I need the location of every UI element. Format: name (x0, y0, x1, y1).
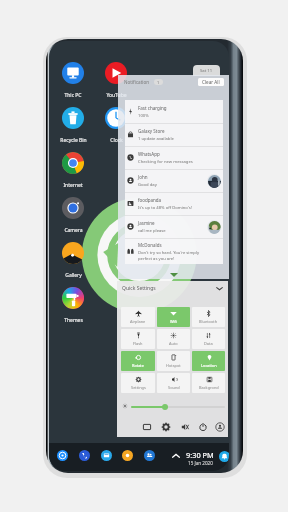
button[interactable]: Rotate (121, 351, 155, 371)
button[interactable]: Quick Settings (122, 281, 223, 295)
staticText: Themes (64, 317, 83, 324)
staticText: John (138, 174, 148, 180)
staticText: Sound (168, 385, 180, 390)
button[interactable]: Notifications (219, 451, 229, 462)
button[interactable]: Jasmine (127, 215, 221, 238)
staticText: It's up to 48% off Domino's! (138, 205, 192, 211)
button[interactable]: Camera (52, 195, 94, 235)
staticText: Recycle Bin (60, 137, 87, 144)
button[interactable]: Volume (180, 422, 190, 432)
button[interactable]: Themes (52, 285, 94, 325)
button[interactable]: Thic PC (52, 60, 94, 100)
staticText: Notification (124, 79, 150, 85)
staticText: Thic PC (64, 92, 82, 99)
button[interactable]: Clock (95, 105, 137, 145)
staticText: Auto (169, 341, 178, 346)
staticText: Checking for new messages (138, 159, 193, 165)
staticText: Galaxy Store (138, 128, 165, 134)
button[interactable]: Power (198, 422, 208, 432)
button[interactable]: YouTube (95, 60, 137, 100)
staticText: Bluetooth (199, 319, 218, 324)
button[interactable]: Gallery (52, 240, 94, 280)
button[interactable]: User (215, 422, 225, 432)
button[interactable]: Location (192, 351, 225, 371)
staticText: Settings (131, 385, 146, 390)
button[interactable]: Auto (157, 329, 190, 349)
button[interactable]: App 1 (57, 450, 68, 461)
staticText: Clock (110, 137, 123, 144)
button[interactable]: Fast charging (127, 100, 221, 123)
staticText: Airplane (130, 319, 146, 324)
button[interactable]: Bluetooth (192, 307, 225, 327)
button[interactable]: John (127, 169, 221, 192)
button[interactable]: Backgrond (192, 373, 225, 393)
button[interactable]: Wifi (157, 307, 190, 327)
button[interactable]: App 2 (79, 450, 90, 461)
staticText: Backgrond (199, 385, 219, 390)
staticText: Camera (64, 227, 83, 234)
staticText: 1 update available (138, 136, 174, 142)
button[interactable]: Show hidden icons (171, 451, 181, 461)
button[interactable]: Clear All (198, 78, 224, 86)
button[interactable]: McDonalds (127, 238, 221, 264)
staticText: 1 (157, 80, 160, 85)
staticText: 100% (138, 113, 149, 119)
button[interactable]: App 3 (101, 450, 112, 461)
staticText: 15 Jan 2020 (188, 460, 213, 466)
staticText: Rotate (132, 363, 144, 368)
staticText: WhatsApp (138, 151, 160, 157)
staticText: Fast charging (138, 105, 167, 111)
button[interactable]: Screen record (142, 422, 152, 432)
button[interactable]: Sound (157, 373, 190, 393)
button[interactable]: Settings (161, 422, 171, 432)
button[interactable]: Flash (121, 329, 155, 349)
staticText: Good day (138, 182, 157, 188)
button[interactable]: App 5 (144, 450, 155, 461)
staticText: 9:30 PM (186, 450, 214, 460)
button[interactable]: Recycle Bin (52, 105, 94, 145)
staticText: Wifi (170, 319, 177, 324)
staticText: Clear All (202, 79, 220, 85)
button[interactable]: Settings (121, 373, 155, 393)
staticText: YouTube (106, 92, 127, 99)
staticText: Hotspot (166, 363, 181, 368)
button[interactable]: Galaxy Store (127, 123, 221, 146)
staticText: Quick Settings (122, 285, 156, 292)
button[interactable]: WhatsApp (127, 146, 221, 169)
button[interactable]: App 4 (122, 450, 133, 461)
staticText: Don't try so hard. You're simply perfect… (138, 250, 200, 261)
staticText: Internet (63, 182, 83, 189)
staticText: call me please (138, 228, 166, 234)
staticText: Gallery (65, 272, 82, 279)
staticText: Flash (133, 341, 143, 346)
staticText: Sat 11 (200, 68, 213, 74)
button[interactable]: Data (192, 329, 225, 349)
staticText: Jasmine (138, 220, 155, 226)
button[interactable]: Airplane (121, 307, 155, 327)
staticText: Location (201, 363, 217, 368)
staticText: Data (204, 341, 213, 346)
button[interactable]: Hotspot (157, 351, 190, 371)
staticText: foodpanda (138, 197, 162, 203)
button[interactable]: foodpanda (127, 192, 221, 215)
staticText: McDonalds (138, 242, 162, 248)
button[interactable]: Internet (52, 150, 94, 190)
